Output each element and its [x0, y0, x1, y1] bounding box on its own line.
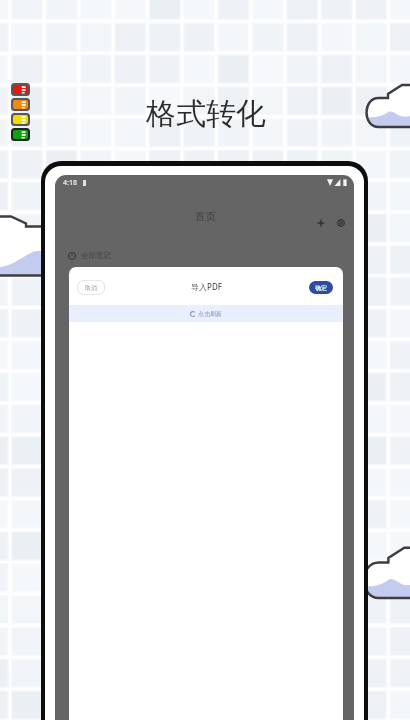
button[interactable]: Settings	[333, 215, 349, 231]
staticText: 4:18	[63, 178, 77, 188]
button[interactable]: 点击刷新	[69, 305, 343, 322]
button[interactable]: Add	[313, 215, 329, 231]
button[interactable]: 取消	[77, 280, 105, 295]
staticText: 导入PDF	[191, 281, 222, 292]
staticText: 格式转化	[146, 95, 266, 133]
staticText: 点击刷新	[198, 310, 222, 318]
staticText: 确定	[315, 284, 327, 292]
staticText: 取消	[85, 284, 97, 292]
staticText: 全部笔记	[81, 251, 111, 260]
button[interactable]: 确定	[309, 281, 333, 294]
staticText: 首页	[195, 210, 216, 223]
button[interactable]: 全部笔记	[68, 251, 111, 260]
